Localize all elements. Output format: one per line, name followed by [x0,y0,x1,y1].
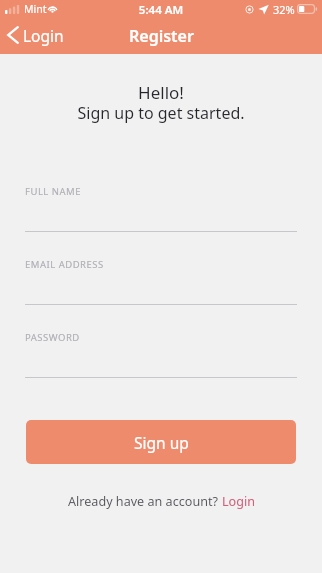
staticText: PASSWORD [25,331,80,344]
button[interactable]: Login [0,23,70,52]
staticText: 32% [273,2,295,17]
staticText: Register [129,25,194,47]
button[interactable]: Already have an account? [66,492,257,511]
other: Focus mode [245,5,254,14]
other: Wi-Fi [47,3,58,13]
button[interactable]: Sign up [26,420,296,464]
button[interactable]: PASSWORD [25,323,297,379]
staticText: 5:44 AM [0,2,322,18]
staticText: Already have an account? [68,493,222,510]
staticText: Sign up [134,432,189,453]
button[interactable]: FULL NAME [25,177,297,233]
staticText: FULL NAME [25,185,81,198]
staticText: Sign up to get started. [0,102,322,124]
other: Cellular signal [5,5,21,14]
staticText: Mint [24,2,47,16]
staticText: Hello! [0,81,322,104]
staticText: Login [222,493,255,510]
button[interactable]: EMAIL ADDRESS [25,250,297,306]
other: Location services [258,4,269,15]
staticText: EMAIL ADDRESS [25,258,104,271]
staticText: Login [23,25,64,46]
other: Battery 32 percent [297,4,318,14]
